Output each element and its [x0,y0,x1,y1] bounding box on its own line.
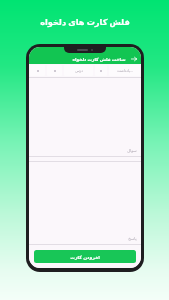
button[interactable]: یادداشت... [109,65,140,76]
staticText: سوال [127,148,137,153]
button[interactable]: Select [47,65,62,76]
button[interactable]: افزودن کارت [34,250,136,263]
staticText: یادداشت... [117,68,133,73]
staticText: افزودن کارت [70,254,100,260]
button[interactable]: Back [129,54,138,63]
staticText: پاسخ [128,236,137,241]
staticText: ساخت فلش کارت دلخواه [72,56,126,62]
button[interactable]: Select [95,65,107,76]
button[interactable]: درس [64,65,93,76]
staticText: فلش کارت های دلخواه [40,16,130,27]
button[interactable]: Select [30,65,45,76]
staticText: درس [75,69,83,73]
